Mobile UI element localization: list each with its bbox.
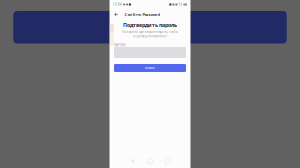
button[interactable]: Готово	[114, 64, 186, 72]
button[interactable]: Recents	[164, 156, 170, 165]
staticText: Подтвердить пароль	[123, 21, 177, 29]
button[interactable]: Back	[129, 156, 135, 165]
staticText: 94	[178, 3, 182, 6]
staticText: Готово	[145, 66, 155, 70]
staticText: Последний шаг: введите пароль, чтобы	[122, 30, 178, 34]
staticText: Confirm Password	[124, 12, 160, 17]
staticText: подтвердить изменения	[133, 34, 167, 38]
staticText: ПАРОЛЬ	[114, 43, 126, 47]
staticText: 12:04	[113, 3, 122, 6]
button[interactable]: Back	[111, 9, 121, 19]
button[interactable]: Home	[147, 156, 153, 165]
